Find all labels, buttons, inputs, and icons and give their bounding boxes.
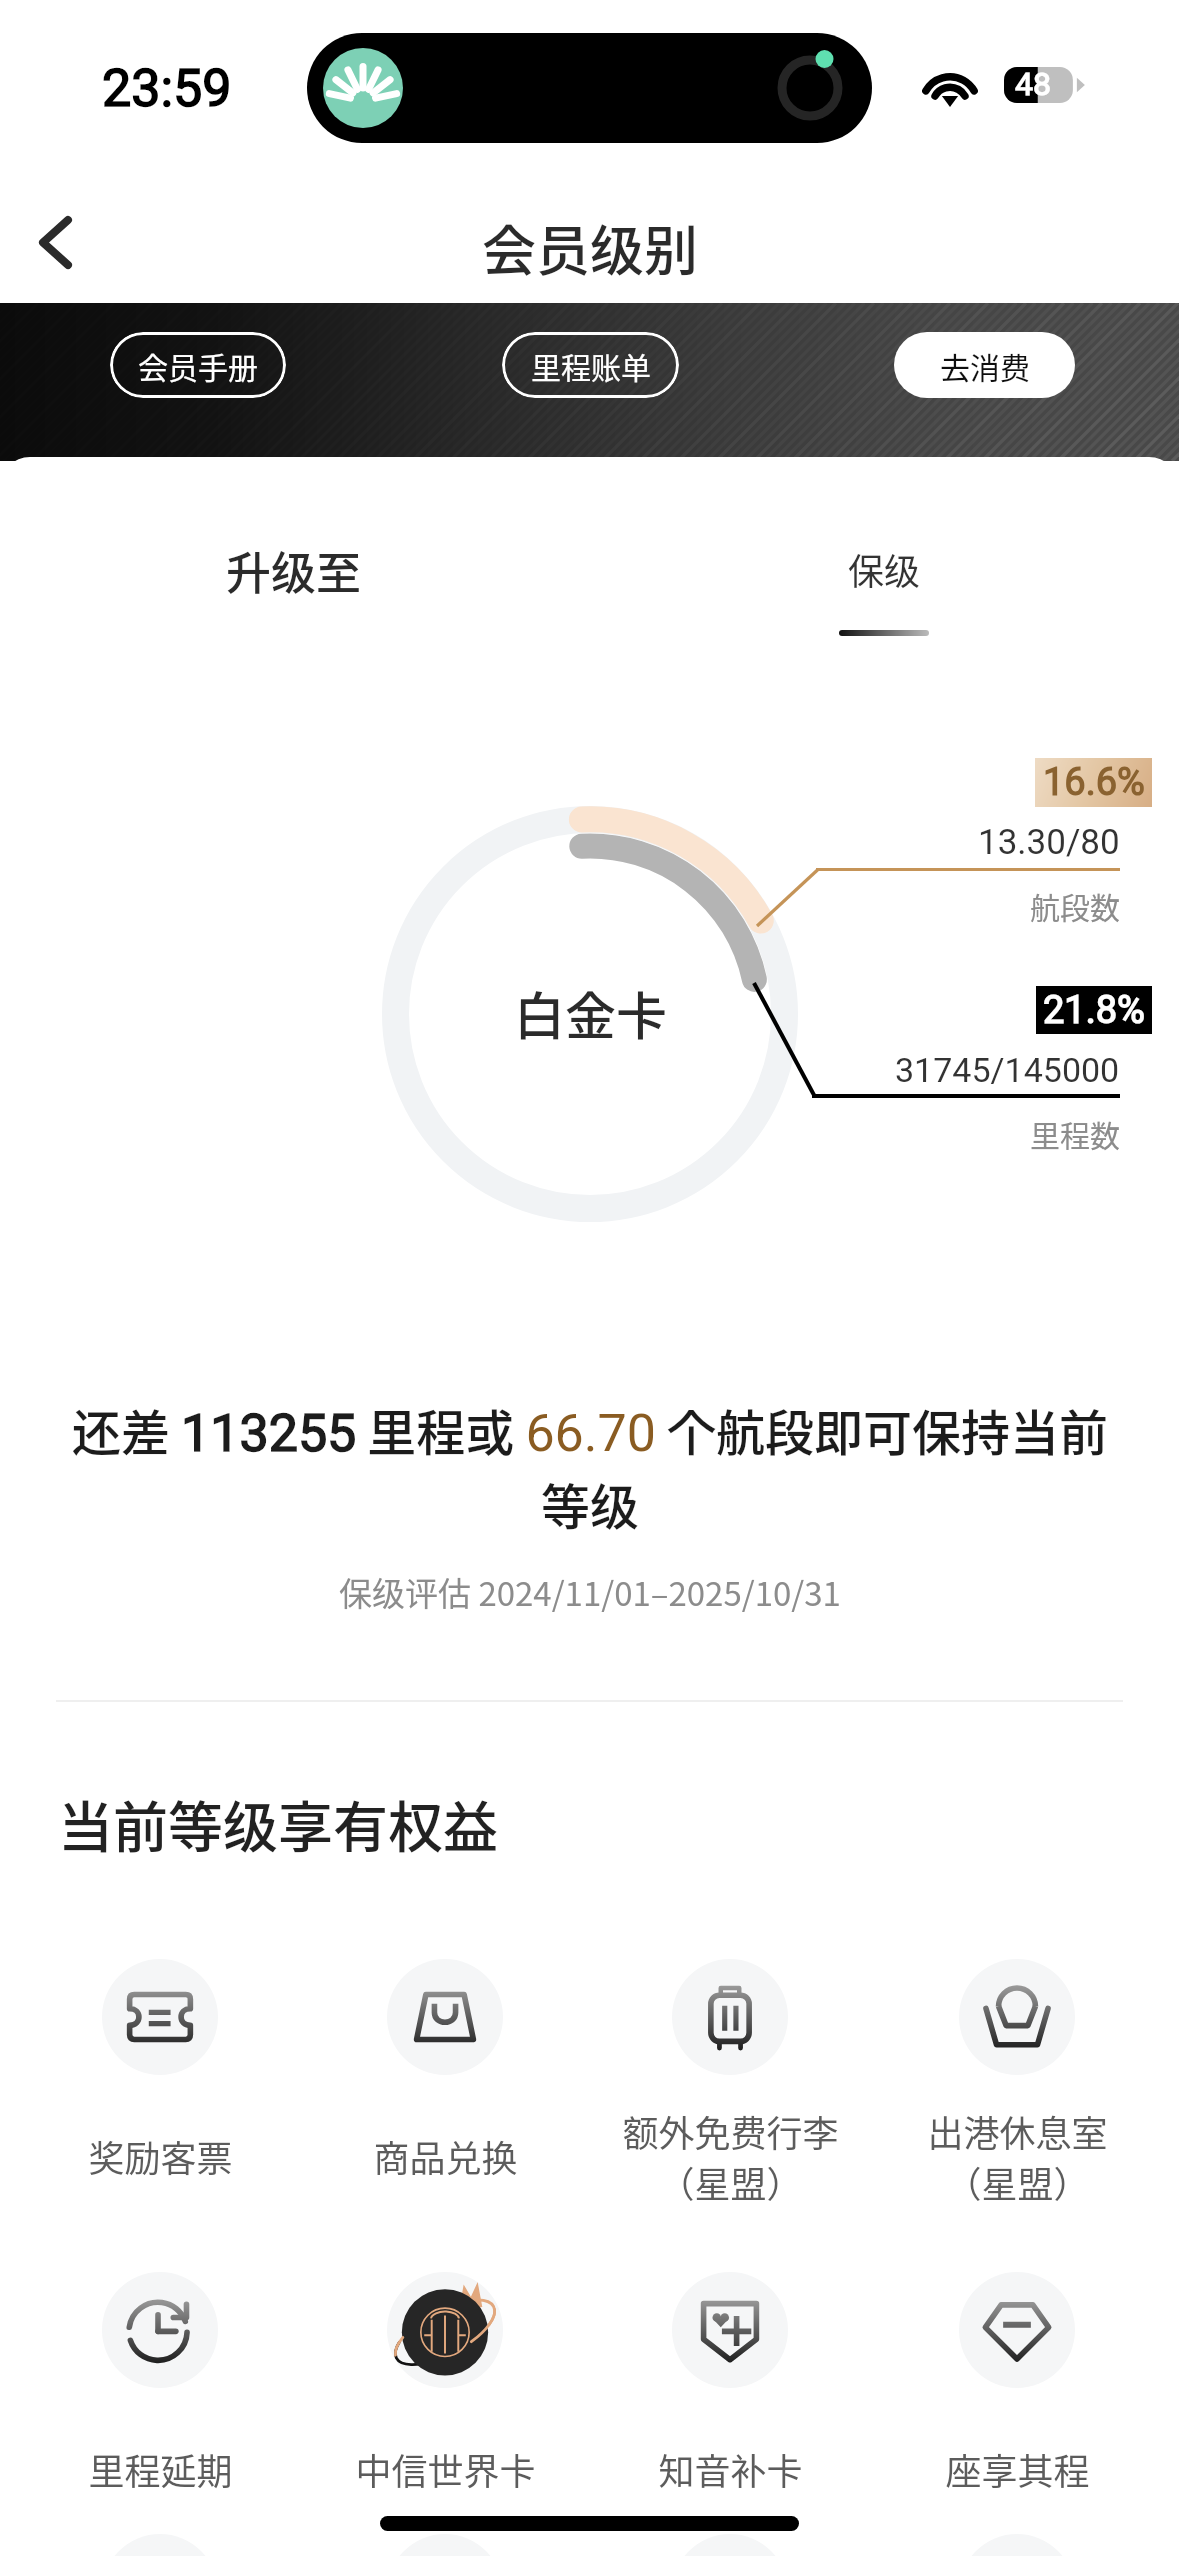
button[interactable]: 出港休息室 （星盟） xyxy=(875,1959,1159,2237)
staticText: 白金卡 xyxy=(514,976,668,1048)
staticText: 23:59 xyxy=(102,58,232,119)
button[interactable]: 奖励客票 xyxy=(18,1959,302,2237)
button[interactable]: 额外免费行李 （星盟） xyxy=(588,1959,872,2237)
staticText: 中信世界卡 xyxy=(355,2443,536,2495)
staticText: 保级 xyxy=(848,543,921,595)
button[interactable]: 座享其程 xyxy=(875,2272,1159,2550)
button[interactable] xyxy=(303,2534,587,2556)
staticText: 升级至 xyxy=(226,538,362,603)
button[interactable]: Back xyxy=(10,197,100,287)
staticText: 知音补卡 xyxy=(658,2443,803,2495)
staticText: 里程数 xyxy=(1030,1112,1120,1155)
staticText: 去消费 xyxy=(940,344,1030,387)
staticText: 会员级别 xyxy=(482,208,698,286)
staticText: 出港休息室 （星盟） xyxy=(927,2105,1108,2208)
staticText: 31745/145000 xyxy=(895,1050,1120,1090)
staticText: 航段数 xyxy=(1030,884,1120,927)
staticText: 还差 113255 里程或 66.70 个航段即可保持当前等级 xyxy=(65,1394,1115,1539)
staticText: 保级评估 2024/11/01–2025/10/31 xyxy=(339,1568,841,1616)
button[interactable]: 中信世界卡 xyxy=(303,2272,587,2550)
staticText: 21.8% xyxy=(1043,988,1145,1033)
staticText: 会员手册 xyxy=(138,344,258,387)
button[interactable]: 里程账单 xyxy=(502,332,679,398)
staticText: 48 xyxy=(1015,65,1051,103)
button[interactable]: 知音补卡 xyxy=(588,2272,872,2550)
button[interactable] xyxy=(18,2534,302,2556)
staticText: 当前等级享有权益 xyxy=(58,1783,499,1863)
button[interactable] xyxy=(875,2534,1159,2556)
button[interactable]: 商品兑换 xyxy=(303,1959,587,2237)
staticText: 额外免费行李 （星盟） xyxy=(622,2105,839,2208)
button[interactable] xyxy=(588,2534,872,2556)
staticText: 奖励客票 xyxy=(88,2130,233,2182)
button[interactable]: 保级 xyxy=(828,536,940,602)
staticText: 座享其程 xyxy=(945,2443,1090,2495)
button[interactable]: 会员手册 xyxy=(110,332,286,398)
button[interactable]: 里程延期 xyxy=(18,2272,302,2550)
staticText: 16.6% xyxy=(1043,760,1145,805)
button[interactable]: 升级至 xyxy=(218,534,370,606)
staticText: 里程延期 xyxy=(88,2443,233,2495)
staticText: 商品兑换 xyxy=(373,2130,518,2182)
staticText: 里程账单 xyxy=(531,344,651,387)
staticText: 13.30/80 xyxy=(978,822,1120,863)
button[interactable]: 去消费 xyxy=(894,332,1075,398)
